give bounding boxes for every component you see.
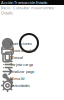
staticText: Finalizar pago <box>10 69 34 74</box>
staticText: Manual <box>10 55 23 60</box>
button[interactable]: Manual <box>0 54 64 61</box>
staticText: Operaciones <box>10 41 32 46</box>
button[interactable]: Finalizar pago <box>0 68 64 75</box>
button[interactable]: Actividades <box>0 82 64 89</box>
staticText: Actividades <box>10 83 30 88</box>
staticText: Inicio · Consultar movimientos · Detalle <box>1 5 56 16</box>
button[interactable]: Tarjeta carga <box>0 61 64 68</box>
button[interactable]: Mostrar saldo <box>0 47 64 54</box>
button[interactable]: Operaciones <box>0 40 64 47</box>
staticText: Tarjeta carga <box>10 62 33 67</box>
button[interactable]: Mesa Id <box>0 75 64 82</box>
staticText: Mesa Id <box>10 76 24 81</box>
staticText: Mostrar saldo <box>10 48 35 53</box>
staticText: Acción Transacción Estado <box>1 0 47 5</box>
